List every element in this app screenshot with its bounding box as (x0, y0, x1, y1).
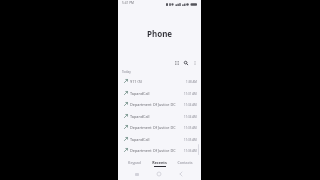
staticText: Contacts (177, 160, 193, 165)
staticText: 11:35 AM (184, 126, 197, 130)
staticText: 11:31 AM (184, 92, 197, 96)
button[interactable]: TapandCall (118, 133, 201, 145)
button[interactable]: 911 (5) (118, 75, 201, 87)
button[interactable]: Department Of Justice DC (118, 144, 201, 156)
staticText: TapandCall (130, 114, 150, 119)
button[interactable]: Recent apps (130, 168, 144, 180)
staticText: Phone (147, 28, 173, 39)
button[interactable]: Search (181, 58, 190, 67)
button[interactable]: Keypad (172, 58, 181, 67)
staticText: Department Of Justice DC (130, 148, 176, 153)
staticText: Recents (152, 160, 167, 165)
staticText: Keypad (128, 160, 141, 165)
staticText: TapandCall (130, 91, 150, 96)
staticText: 11:35 AM (184, 138, 197, 142)
button[interactable]: Recents (147, 158, 172, 168)
staticText: 1:38 AM (186, 80, 197, 84)
staticText: 11:34 AM (184, 115, 197, 119)
button[interactable]: TapandCall (118, 87, 201, 99)
button[interactable]: Department Of Justice DC (118, 121, 201, 133)
button[interactable]: TapandCall (118, 110, 201, 122)
button[interactable]: Contacts (172, 158, 197, 168)
staticText: 911 (5) (130, 79, 142, 84)
staticText: 5:41 PM (122, 1, 134, 5)
button[interactable]: Keypad (121, 158, 147, 168)
button[interactable]: Back (174, 168, 188, 180)
staticText: 11:36 AM (184, 149, 197, 153)
button[interactable]: Home (152, 168, 166, 180)
staticText: TapandCall (130, 137, 150, 142)
staticText: Department Of Justice DC (130, 125, 176, 130)
staticText: Department Of Justice DC (130, 102, 176, 107)
staticText: Today (122, 70, 131, 74)
button[interactable]: Department Of Justice DC (118, 98, 201, 110)
button[interactable]: More options (190, 58, 199, 67)
staticText: 11:34 AM (184, 103, 197, 107)
